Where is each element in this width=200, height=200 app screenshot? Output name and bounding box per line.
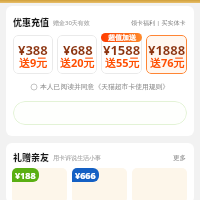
staticText: 送20元 [60,55,95,70]
button[interactable]: ¥388 [13,35,53,74]
staticText: 送9元 [19,55,48,70]
staticText: ¥1588 [103,41,141,59]
staticText: 送76元 [150,55,185,70]
staticText: 赠金30天有效 [53,19,90,27]
staticText: 优惠充值 [13,16,50,29]
button[interactable]: 领卡福利 | 买实体卡 [130,18,187,28]
staticText: ¥688 [63,41,93,59]
staticText: ¥1888 [148,41,186,59]
staticText: 礼赠亲友 [13,151,50,164]
staticText: 送55元 [105,55,140,70]
staticText: ¥188 [15,169,36,181]
button[interactable]: ¥688 [57,35,97,74]
button[interactable]: 本人已阅读并同意《天猫超市卡使用规则》 [6,82,194,91]
button[interactable]: ¥666 [72,168,127,200]
staticText: 超值加送 [108,33,136,42]
staticText: 用卡诉说生活小事 [53,154,101,162]
button[interactable]: ¥1888 [146,35,187,74]
button[interactable]: ¥1588 [101,35,142,74]
button[interactable] [13,101,187,125]
staticText: ¥666 [75,169,96,181]
staticText: ¥388 [18,41,48,59]
button[interactable]: ¥188 [12,168,67,200]
staticText: 更多 [173,154,186,162]
staticText: 本人已阅读并同意《天猫超市卡使用规则》 [40,82,170,91]
button[interactable]: 更多 [172,153,187,163]
staticText: 领卡福利 | 买实体卡 [131,19,186,27]
